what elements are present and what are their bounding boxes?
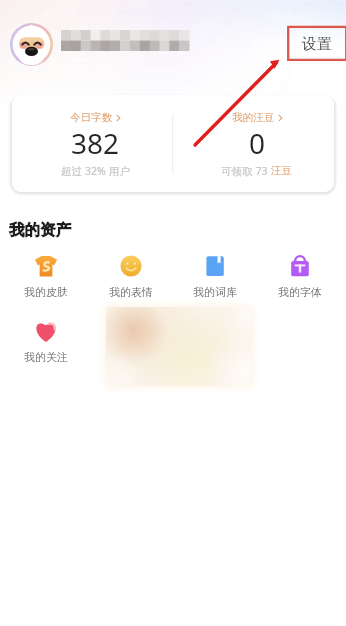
button[interactable] <box>258 247 342 299</box>
button[interactable] <box>89 247 173 299</box>
staticText: 我的皮肤 <box>24 285 68 299</box>
staticText: 我的关注 <box>24 350 68 364</box>
staticText: 可领取 73 <box>221 164 271 178</box>
button[interactable] <box>4 247 88 299</box>
staticText: 我的汪豆 <box>232 111 275 124</box>
button[interactable] <box>15 95 175 192</box>
staticText: 汪豆 <box>271 164 293 177</box>
staticText: 我的资产 <box>9 220 71 240</box>
staticText: 超过 32% 用户 <box>61 164 130 178</box>
button[interactable] <box>173 247 257 299</box>
button[interactable]: 设置 <box>294 30 340 58</box>
staticText: 我的词库 <box>193 285 237 299</box>
button[interactable] <box>177 95 337 192</box>
staticText: 我的表情 <box>109 285 153 299</box>
staticText: 设置 <box>302 35 332 54</box>
staticText: 我的字体 <box>278 285 322 299</box>
button[interactable] <box>4 312 88 364</box>
staticText: 今日字数 <box>70 111 113 124</box>
button[interactable]: Profile avatar <box>10 23 53 66</box>
staticText: 382 <box>71 124 120 162</box>
staticText: 0 <box>249 124 266 162</box>
